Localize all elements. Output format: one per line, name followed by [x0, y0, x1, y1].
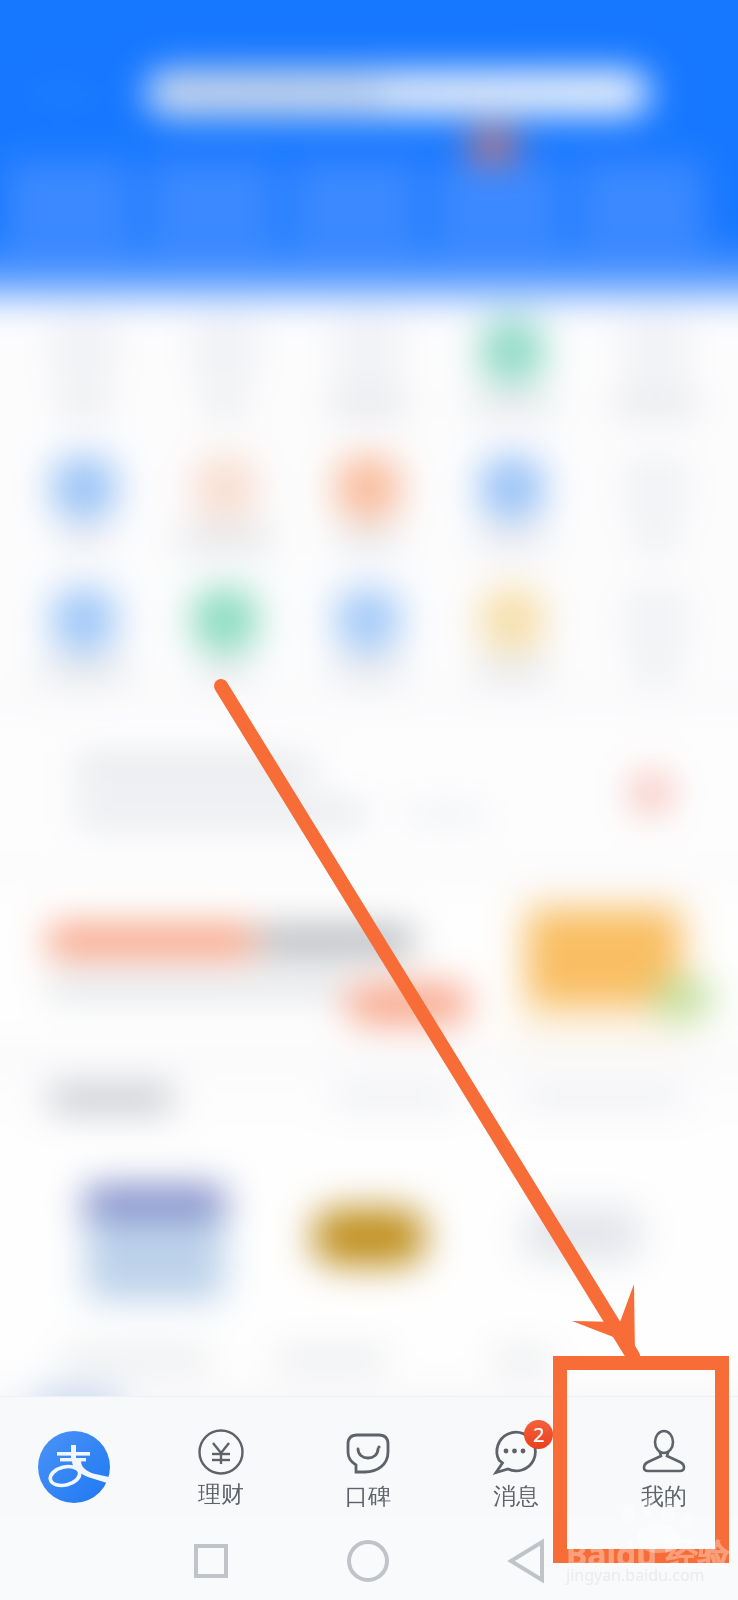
staticText: 消息 [493, 1482, 539, 1511]
staticText: 我的 [641, 1482, 687, 1511]
button[interactable]: 支付宝首页 [0, 1397, 147, 1516]
staticText: Baidu 经验 [566, 1532, 730, 1576]
staticText: 2 [533, 1421, 545, 1448]
button[interactable]: 2 [442, 1397, 590, 1516]
staticText: 口碑 [345, 1482, 391, 1511]
button[interactable]: 口碑 [294, 1397, 442, 1516]
staticText: jingyan.baidu.com [566, 1564, 705, 1586]
button[interactable]: 理财 [147, 1397, 294, 1516]
staticText: 理财 [198, 1480, 244, 1509]
button[interactable]: 我的 [590, 1397, 738, 1516]
